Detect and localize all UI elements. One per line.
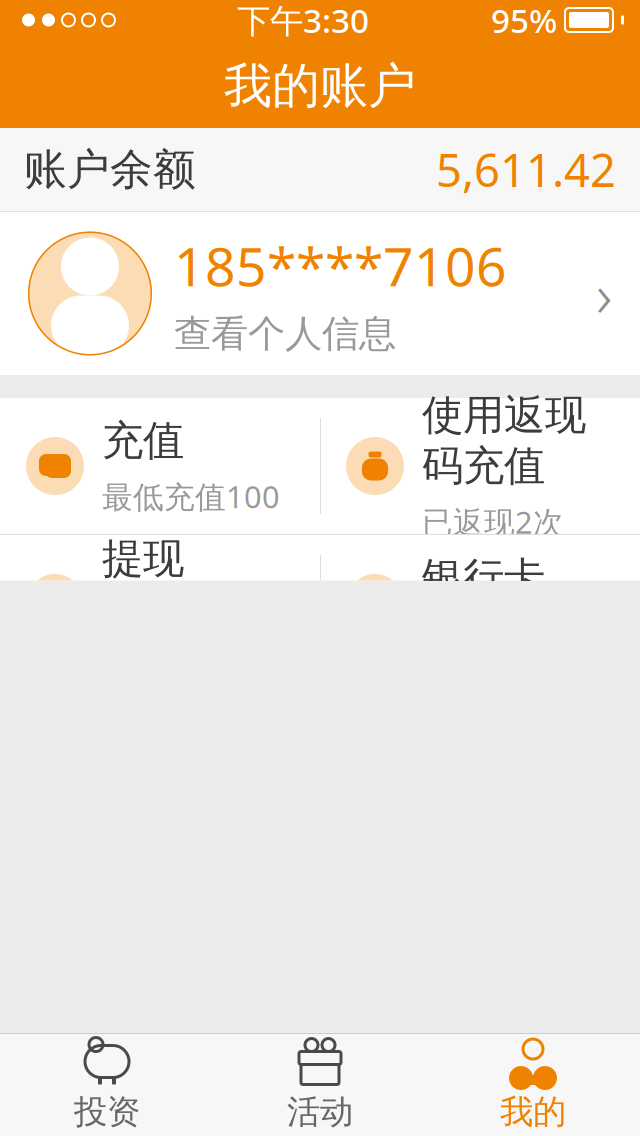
staticText: 5,611.42 xyxy=(436,139,616,200)
staticText: 已返现2次 xyxy=(422,501,564,542)
staticText: 最低充值100 xyxy=(102,476,280,517)
staticText: 充值 xyxy=(102,415,184,466)
staticText: 使用返现码充值 xyxy=(422,390,586,491)
staticText: 查看个人信息 xyxy=(174,311,396,357)
button[interactable]: 185****7106 xyxy=(0,212,640,375)
staticText: 我的 xyxy=(500,1091,566,1132)
staticText: 银行卡 xyxy=(422,552,545,603)
staticText: 提现 xyxy=(102,533,184,584)
button[interactable]: 我的 xyxy=(426,1035,639,1135)
staticText: 我的账户 xyxy=(224,56,416,115)
button[interactable]: 投资 xyxy=(0,1035,213,1135)
button[interactable]: ¥ xyxy=(0,535,320,671)
staticText: 185****7106 xyxy=(174,230,507,301)
staticText: 账户余额 xyxy=(24,143,196,196)
staticText: 活动 xyxy=(287,1091,353,1132)
staticText: 95% xyxy=(491,0,557,42)
button[interactable]: 活动 xyxy=(213,1035,426,1135)
staticText: 投资 xyxy=(74,1091,140,1132)
button[interactable]: 银行卡 xyxy=(320,535,640,671)
staticText: 下午3:30 xyxy=(237,0,369,42)
button[interactable]: 使用返现码充值 xyxy=(320,398,640,534)
staticText: › xyxy=(596,253,612,334)
button[interactable]: 充值 xyxy=(0,398,320,534)
